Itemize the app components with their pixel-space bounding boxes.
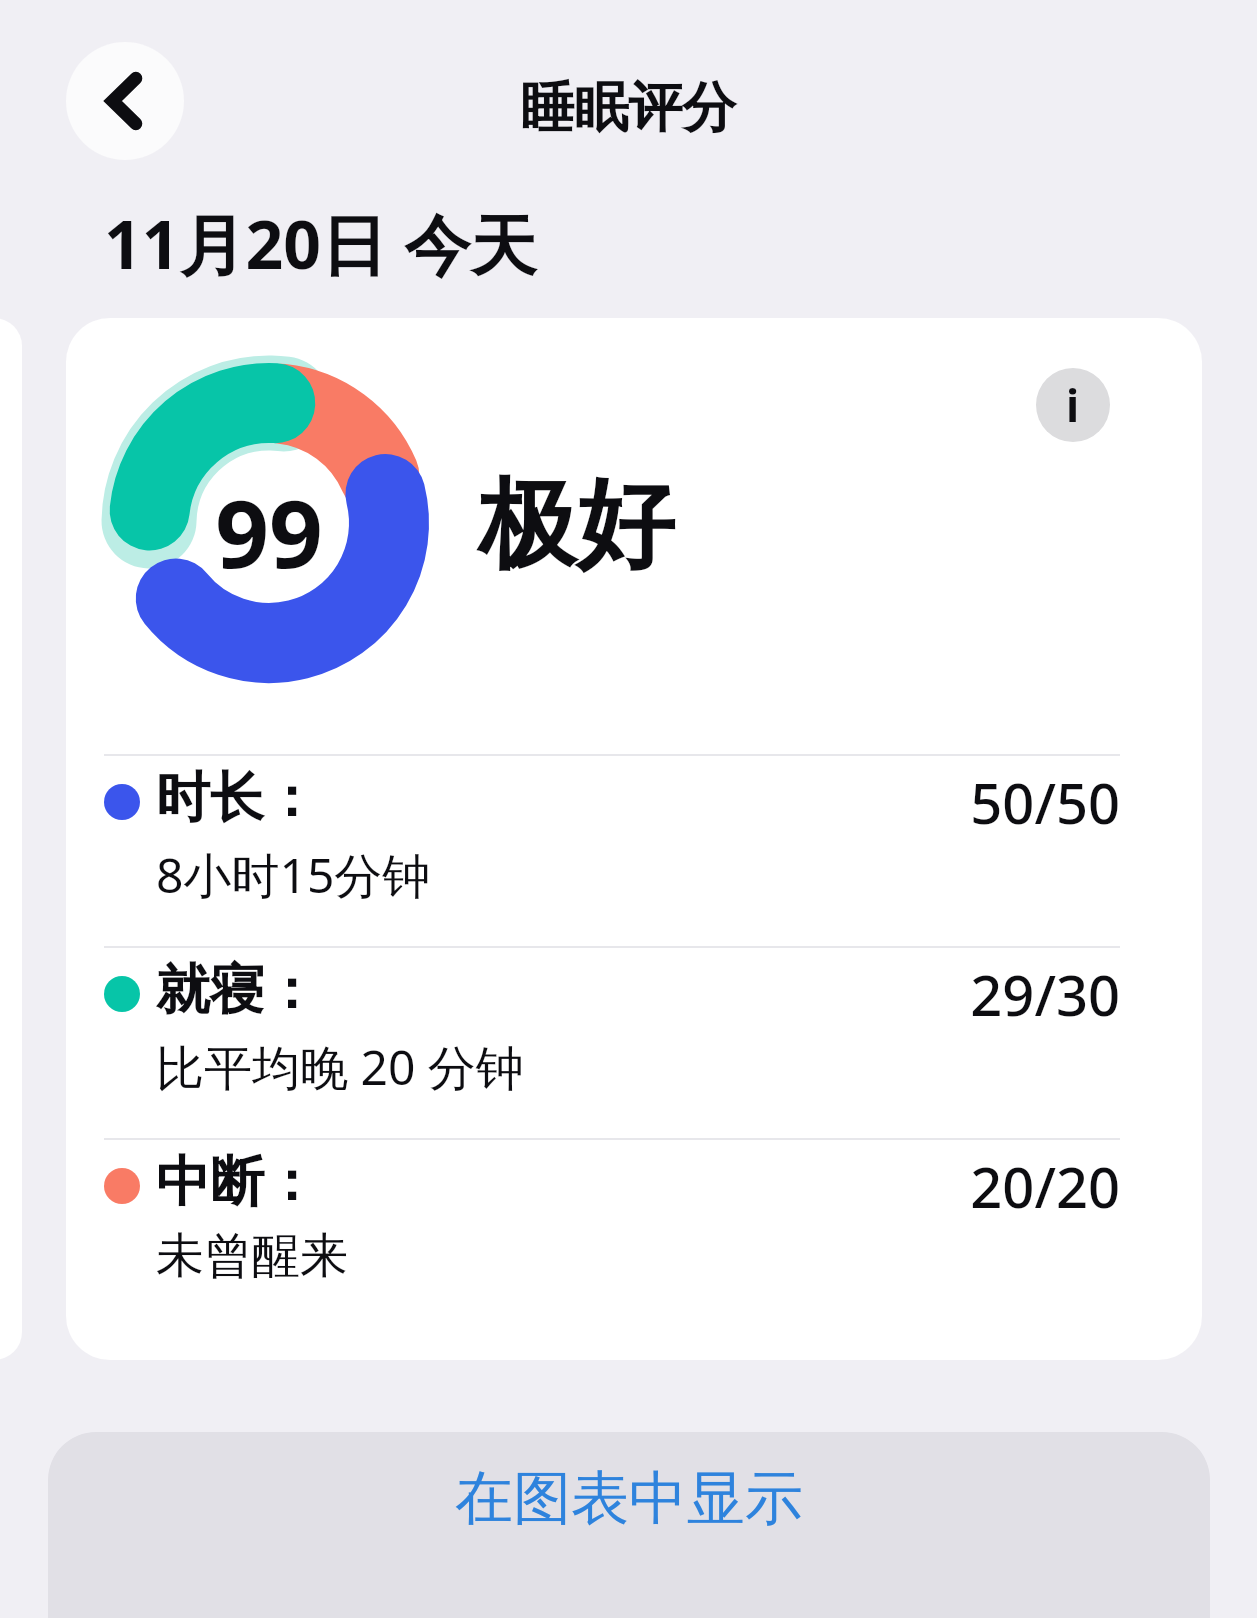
staticText: 20/20 (756, 1148, 1120, 1224)
staticText: 就寝： (156, 956, 318, 1024)
button[interactable]: 中断： (66, 1142, 1202, 1328)
button[interactable]: 时长： (66, 758, 1202, 944)
staticText: 未曾醒来 (156, 1226, 348, 1286)
staticText: 8小时15分钟 (156, 842, 431, 908)
staticText: 29/30 (756, 956, 1120, 1032)
staticText: 11月20日 今天 (104, 198, 537, 288)
staticText: i (1066, 375, 1080, 435)
button[interactable]: Info (1036, 368, 1110, 442)
button[interactable]: Back (66, 42, 184, 160)
staticText: 极好 (478, 464, 674, 587)
staticText: 50/50 (756, 764, 1120, 840)
staticText: 睡眠评分 (0, 74, 1257, 142)
staticText: 比平均晚 20 分钟 (156, 1034, 524, 1100)
staticText: 99 (104, 468, 434, 596)
button[interactable]: 在图表中显示 (48, 1432, 1210, 1618)
staticText: 在图表中显示 (48, 1462, 1210, 1535)
staticText: 中断： (156, 1148, 318, 1216)
staticText: 时长： (156, 764, 318, 832)
button[interactable]: 就寝： (66, 950, 1202, 1136)
